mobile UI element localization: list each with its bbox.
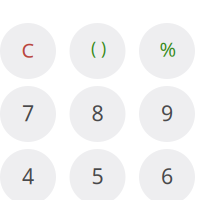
button[interactable]: ( ) — [69, 23, 125, 79]
staticText: 8 — [91, 99, 103, 127]
staticText: 7 — [22, 99, 34, 127]
button[interactable]: 8 — [69, 86, 125, 142]
staticText: 5 — [91, 162, 103, 190]
button[interactable]: 4 — [0, 149, 56, 200]
staticText: 4 — [22, 162, 34, 190]
staticText: 6 — [161, 162, 173, 190]
button[interactable]: C — [0, 23, 56, 79]
staticText: ( ) — [91, 36, 106, 59]
staticText: 9 — [161, 99, 173, 127]
staticText: C — [21, 37, 34, 63]
button[interactable]: 7 — [0, 86, 56, 142]
button[interactable]: % — [139, 23, 195, 79]
button[interactable]: 5 — [69, 149, 125, 200]
button[interactable]: 6 — [139, 149, 195, 200]
button[interactable]: 9 — [139, 86, 195, 142]
staticText: % — [159, 36, 176, 62]
